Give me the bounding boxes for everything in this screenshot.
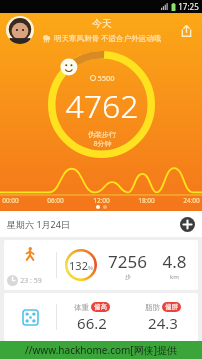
staticText: 24.3 [148,313,178,333]
button[interactable]: Profile [6,16,34,44]
staticText: % [88,264,93,272]
staticText: 今天 [92,17,112,30]
staticText: 23 : 59 [20,276,42,286]
staticText: 7256 [108,250,147,273]
staticText: //www.hackhome.com[网侠]提供 [25,343,177,357]
staticText: 伪装步行 [88,130,116,139]
staticText: 星期六 1月24日 [7,218,70,230]
staticText: 脂肪 [145,303,160,312]
button[interactable]: Share [175,19,197,41]
staticText: 偏高 [94,303,107,311]
staticText: km [170,273,179,281]
staticText: 8分钟 [93,139,112,149]
button[interactable]: 体重 [4,293,198,341]
staticText: 偏胖 [165,303,178,311]
staticText: 5500 [97,73,115,83]
staticText: 体重 [74,303,89,312]
staticText: 17:25 [178,1,199,12]
staticText: 132 [69,258,88,273]
staticText: 18:00 [138,196,155,205]
staticText: 步 [125,273,131,281]
button[interactable]: Add record [180,217,195,232]
staticText: 00:00 [2,196,19,205]
staticText: 06:00 [47,196,64,205]
staticText: 4762 [65,84,139,128]
staticText: 12:00 [93,196,110,205]
staticText: 66.2 [77,313,107,333]
staticText: 24:00 [183,196,200,205]
staticText: 明天寒风刺骨 不适合户外运动哦 [54,33,161,43]
button[interactable]: 23 : 59 [4,240,198,290]
staticText: 4.8 [162,250,187,273]
